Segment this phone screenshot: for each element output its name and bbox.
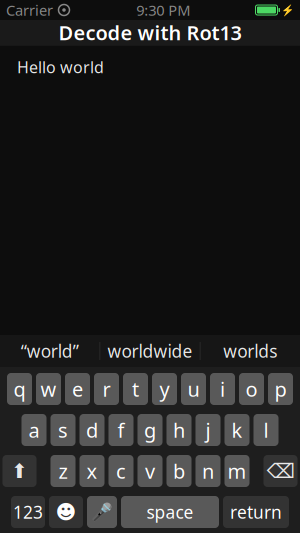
button[interactable]: worldwide: [100, 335, 200, 367]
staticText: e: [72, 376, 83, 402]
staticText: z: [58, 458, 67, 484]
button[interactable]: p: [268, 373, 293, 405]
staticText: c: [116, 458, 126, 484]
button[interactable]: k: [224, 414, 249, 446]
button[interactable]: o: [239, 373, 264, 405]
staticText: worlds: [223, 339, 277, 362]
button[interactable]: s: [50, 414, 75, 446]
staticText: k: [231, 417, 242, 443]
staticText: s: [58, 417, 68, 443]
button[interactable]: j: [195, 414, 220, 446]
staticText: “world”: [21, 339, 79, 362]
button[interactable]: a: [21, 414, 46, 446]
staticText: 9:30 PM: [136, 0, 190, 20]
button[interactable]: u: [181, 373, 206, 405]
staticText: d: [86, 417, 98, 443]
button[interactable]: Delete: [263, 455, 297, 487]
button[interactable]: q: [7, 373, 32, 405]
staticText: Carrier: [6, 0, 53, 20]
staticText: n: [202, 458, 214, 484]
button[interactable]: r: [94, 373, 119, 405]
button[interactable]: space: [121, 496, 219, 528]
button[interactable]: f: [108, 414, 133, 446]
button[interactable]: e: [65, 373, 90, 405]
button[interactable]: y: [152, 373, 177, 405]
button[interactable]: i: [210, 373, 235, 405]
staticText: ☻: [55, 501, 76, 523]
button[interactable]: v: [137, 455, 162, 487]
button[interactable]: Shift: [2, 455, 36, 487]
staticText: g: [144, 417, 156, 443]
button[interactable]: l: [253, 414, 278, 446]
staticText: r: [102, 376, 110, 402]
button[interactable]: n: [195, 455, 220, 487]
staticText: ⌫: [266, 460, 294, 482]
staticText: b: [173, 458, 185, 484]
staticText: x: [86, 458, 97, 484]
staticText: t: [132, 376, 139, 402]
button[interactable]: 🎤: [87, 496, 117, 528]
staticText: Hello world: [17, 56, 104, 78]
staticText: ⚡: [281, 4, 294, 16]
button[interactable]: z: [50, 455, 75, 487]
staticText: 🎤: [91, 502, 113, 522]
button[interactable]: “world”: [0, 335, 100, 367]
button[interactable]: c: [108, 455, 133, 487]
staticText: Decode with Rot13: [58, 19, 241, 46]
button[interactable]: x: [79, 455, 104, 487]
staticText: w: [40, 376, 56, 402]
button[interactable]: g: [137, 414, 162, 446]
staticText: worldwide: [107, 339, 192, 362]
staticText: l: [263, 417, 268, 443]
staticText: 123: [13, 500, 43, 523]
button[interactable]: w: [36, 373, 61, 405]
button[interactable]: return: [223, 496, 289, 528]
staticText: space: [146, 500, 193, 523]
button[interactable]: d: [79, 414, 104, 446]
button[interactable]: m: [224, 455, 249, 487]
staticText: a: [28, 417, 39, 443]
staticText: y: [159, 376, 169, 402]
staticText: j: [205, 417, 210, 443]
button[interactable]: worlds: [200, 335, 300, 367]
staticText: p: [274, 376, 286, 402]
staticText: ⬆: [11, 460, 28, 482]
staticText: o: [245, 376, 257, 402]
staticText: i: [220, 376, 225, 402]
staticText: f: [117, 417, 124, 443]
button[interactable]: h: [166, 414, 191, 446]
button[interactable]: 123: [11, 496, 45, 528]
button[interactable]: t: [123, 373, 148, 405]
staticText: u: [187, 376, 199, 402]
staticText: return: [230, 500, 282, 523]
staticText: q: [13, 376, 25, 402]
staticText: h: [173, 417, 185, 443]
staticText: v: [145, 458, 155, 484]
button[interactable]: ☻: [49, 496, 83, 528]
button[interactable]: b: [166, 455, 191, 487]
staticText: m: [227, 458, 246, 484]
